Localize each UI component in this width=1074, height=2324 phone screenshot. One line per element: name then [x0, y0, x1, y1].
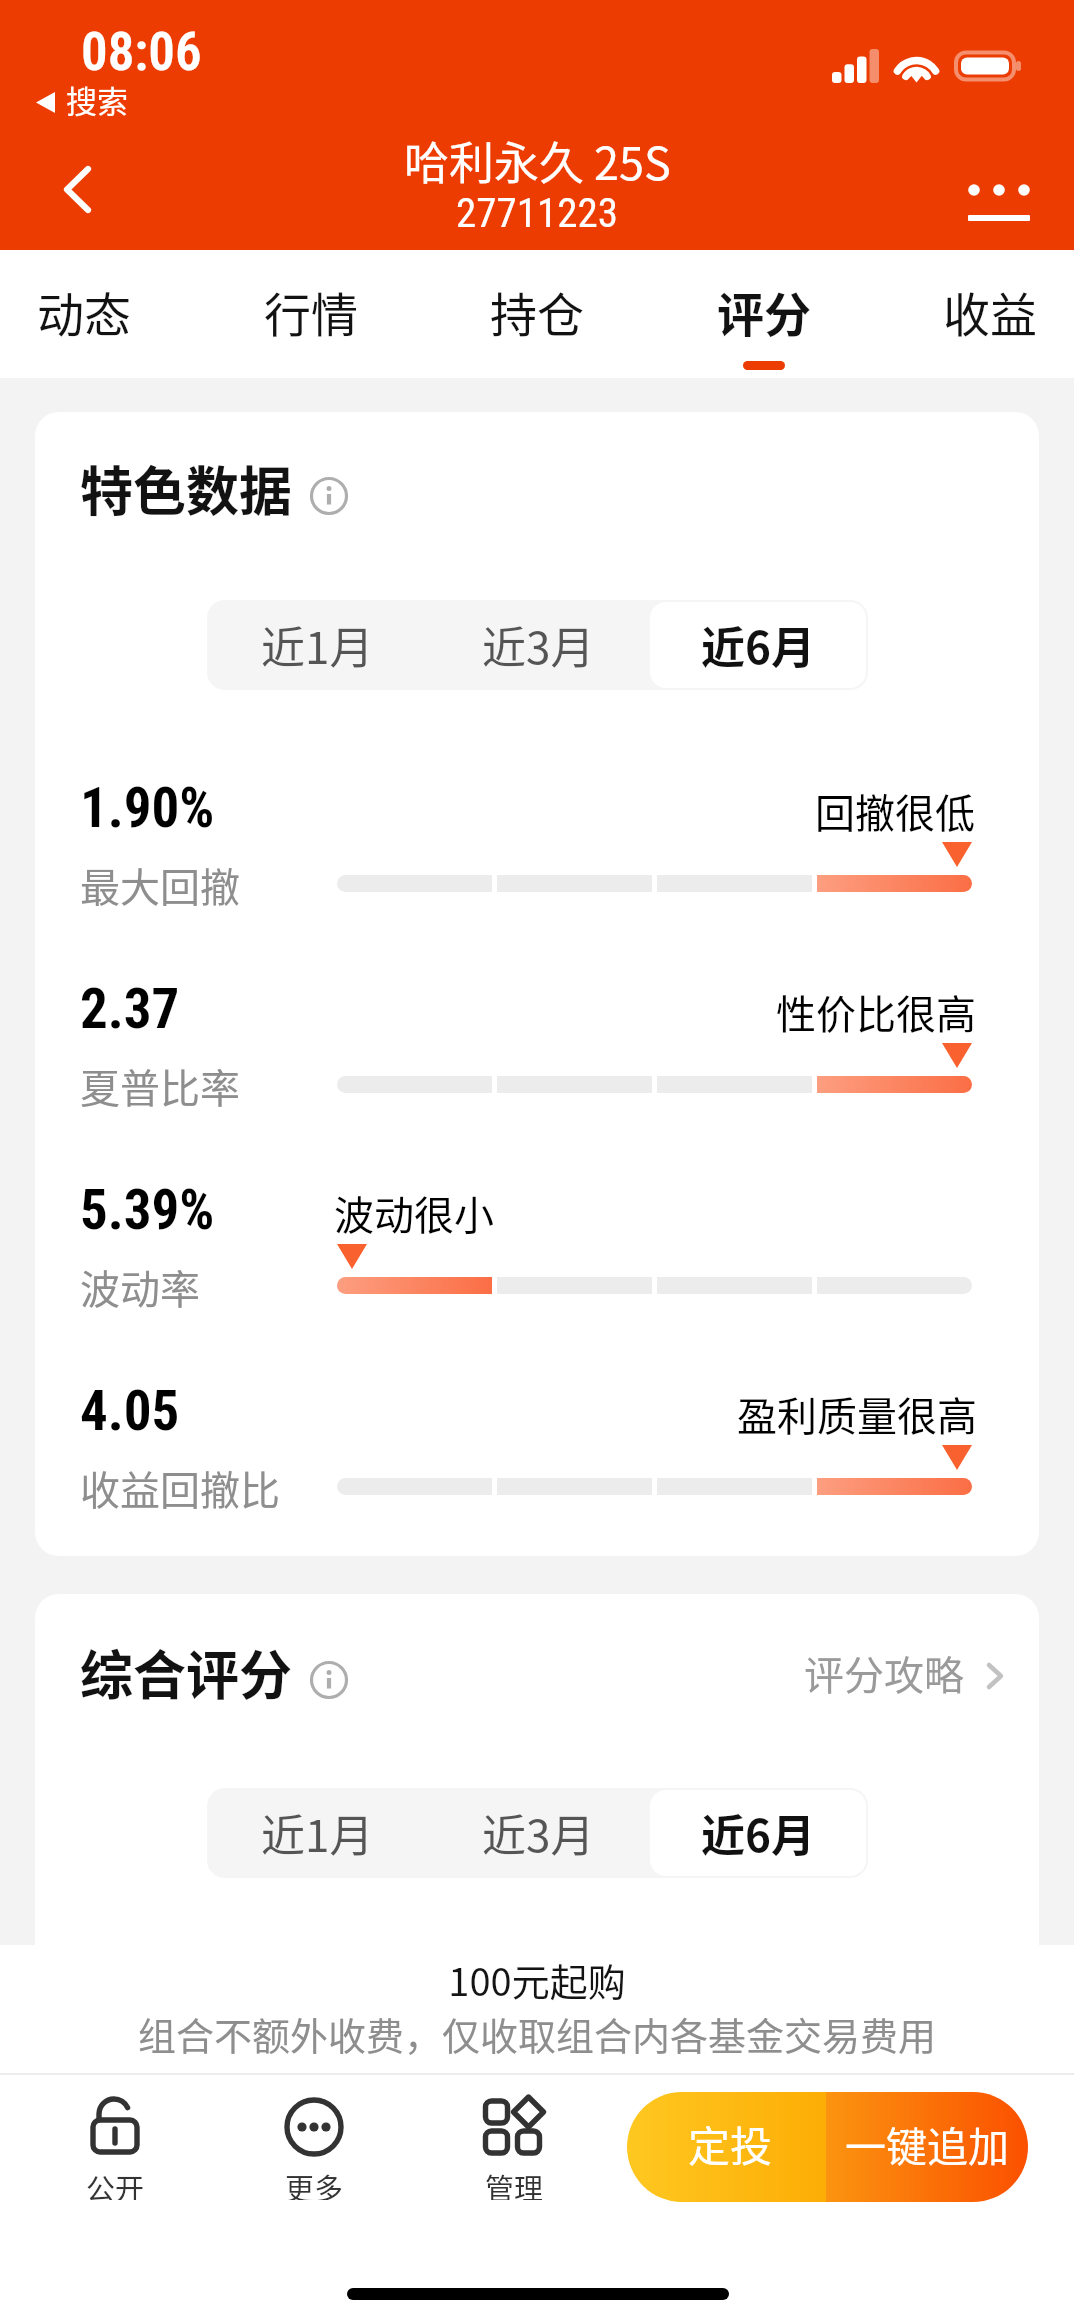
staticText: 定投: [688, 2113, 773, 2174]
button[interactable]: 管理: [414, 2090, 614, 2200]
staticText: 评分: [717, 277, 811, 345]
staticText: 行情: [264, 277, 358, 345]
staticText: 近1月: [261, 613, 374, 677]
staticText: 盈利质量很高: [737, 1385, 977, 1443]
button[interactable]: 评分攻略: [804, 1644, 1003, 1702]
staticText: 27711223: [456, 189, 618, 237]
staticText: 最大回撤: [80, 856, 240, 914]
staticText: 管理: [485, 2166, 544, 2200]
staticText: 搜索: [66, 77, 128, 122]
staticText: 波动很小: [334, 1184, 494, 1242]
staticText: 近3月: [482, 1801, 595, 1865]
button[interactable]: 动态: [37, 250, 131, 378]
staticText: 近6月: [701, 613, 815, 677]
staticText: 夏普比率: [80, 1057, 240, 1115]
button[interactable]: 定投: [627, 2092, 826, 2202]
staticText: 一键追加: [845, 2114, 1009, 2173]
staticText: 公开: [86, 2166, 145, 2200]
button[interactable]: 近3月: [430, 1790, 646, 1876]
button[interactable]: 更多: [214, 2090, 414, 2200]
staticText: 收益回撤比: [80, 1459, 280, 1517]
button[interactable]: 收益: [943, 250, 1037, 378]
staticText: 评分攻略: [804, 1644, 964, 1702]
button[interactable]: 近6月: [650, 602, 866, 688]
staticText: 1.90%: [80, 776, 215, 840]
staticText: 100元起购: [0, 1952, 1074, 2007]
button[interactable]: 近3月: [430, 602, 646, 688]
staticText: 更多: [285, 2166, 344, 2200]
staticText: 综合评分: [80, 1634, 292, 1711]
staticText: 动态: [37, 277, 131, 345]
staticText: 持仓: [490, 277, 584, 345]
staticText: 08:06: [81, 21, 202, 83]
button[interactable]: 近1月: [209, 602, 426, 688]
button[interactable]: 一键追加: [826, 2092, 1028, 2202]
button[interactable]: Back: [24, 140, 132, 240]
button[interactable]: 行情: [264, 250, 358, 378]
staticText: 近1月: [261, 1801, 374, 1865]
staticText: 哈利永久 25S: [404, 128, 671, 193]
staticText: 近3月: [482, 613, 595, 677]
button[interactable]: 近1月: [209, 1790, 426, 1876]
staticText: 组合不额外收费，仅收取组合内各基金交易费用: [0, 2006, 1074, 2061]
staticText: 2.37: [80, 977, 180, 1041]
staticText: 回撤很低: [815, 782, 975, 840]
button[interactable]: 评分: [717, 250, 811, 378]
staticText: 波动率: [80, 1258, 200, 1316]
staticText: 近6月: [701, 1801, 815, 1865]
button[interactable]: 公开: [15, 2090, 215, 2200]
staticText: 5.39%: [80, 1178, 215, 1242]
button[interactable]: 持仓: [490, 250, 584, 378]
button[interactable]: 近6月: [650, 1790, 866, 1876]
staticText: 4.05: [80, 1379, 180, 1443]
staticText: 收益: [943, 277, 1037, 345]
staticText: 特色数据: [80, 450, 292, 527]
button[interactable]: More options: [943, 148, 1055, 240]
staticText: 性价比很高: [776, 983, 976, 1041]
